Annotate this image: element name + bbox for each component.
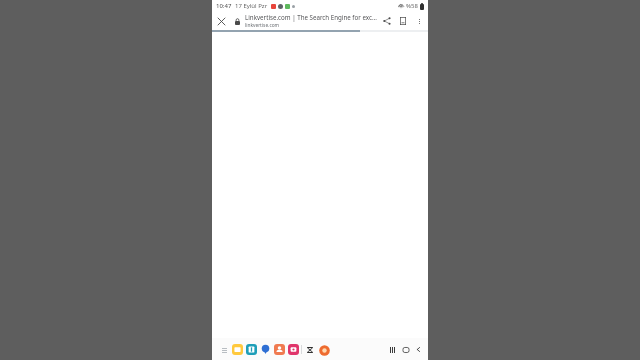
- button[interactable]: Home: [399, 343, 412, 356]
- button[interactable]: Bookmark: [395, 13, 411, 29]
- staticText: linkvertise.com: [245, 22, 280, 29]
- button[interactable]: Apps: [219, 345, 229, 355]
- staticText: 17 Eylül Pzr: [235, 2, 268, 10]
- button[interactable]: Share: [379, 13, 395, 29]
- button[interactable]: Close: [212, 12, 230, 30]
- button[interactable]: Site information: [230, 14, 244, 28]
- button[interactable]: App: [304, 344, 315, 355]
- button[interactable]: Instagram: [288, 344, 299, 355]
- button[interactable]: Calendar: [246, 344, 257, 355]
- staticText: Linkvertise.com | The Search Engine for …: [245, 13, 377, 21]
- button[interactable]: Browser: [318, 344, 330, 356]
- staticText: %58: [406, 2, 418, 10]
- button[interactable]: Notes: [232, 344, 243, 355]
- button[interactable]: Linkvertise.com | The Search Engine for …: [245, 13, 377, 29]
- button[interactable]: Recent apps: [386, 343, 399, 356]
- button[interactable]: More options: [411, 13, 427, 29]
- button[interactable]: Contacts: [274, 344, 285, 355]
- button[interactable]: Messenger: [260, 344, 271, 355]
- staticText: 10:47: [216, 2, 232, 10]
- button[interactable]: Back: [412, 343, 425, 356]
